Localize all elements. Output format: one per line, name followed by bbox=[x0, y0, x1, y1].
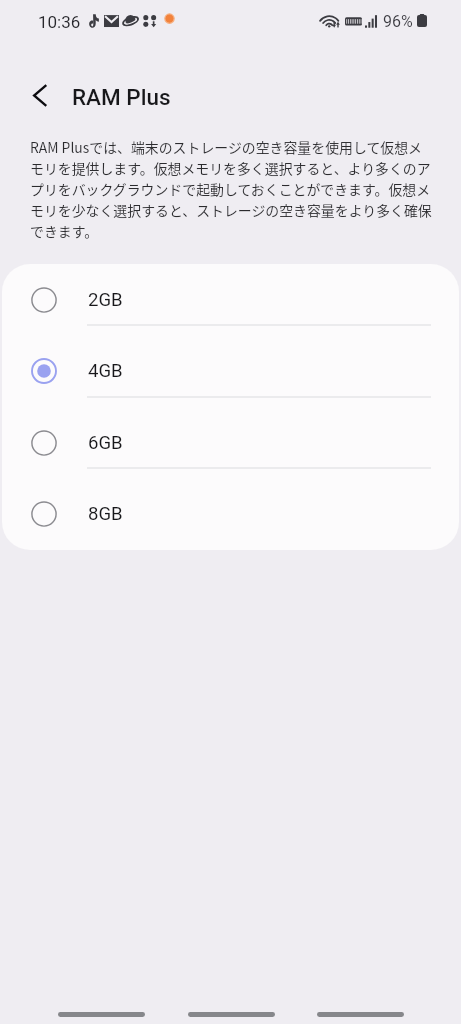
staticText: 96% bbox=[383, 12, 413, 31]
button[interactable]: 4GB bbox=[2, 335, 459, 406]
button[interactable]: 2GB bbox=[2, 264, 459, 335]
staticText: モリを提供します。仮想メモリを多く選択すると、より多くのア bbox=[30, 158, 431, 178]
staticText: RAM Plus bbox=[72, 84, 171, 110]
staticText: 10:36 bbox=[38, 12, 81, 32]
staticText: 8GB bbox=[88, 503, 123, 525]
staticText: 4GB bbox=[88, 360, 123, 382]
staticText: できます。 bbox=[30, 221, 99, 241]
button[interactable]: Back bbox=[317, 994, 404, 1022]
button[interactable]: Back bbox=[21, 76, 61, 116]
staticText: 2GB bbox=[88, 289, 123, 311]
staticText: 6GB bbox=[88, 432, 123, 454]
staticText: モリを少なく選択すると、ストレージの空き容量をより多く確保 bbox=[30, 200, 432, 220]
staticText: RAM Plusでは、端末のストレージの空き容量を使用して仮想メ bbox=[30, 137, 422, 157]
button[interactable]: Home bbox=[188, 994, 275, 1022]
button[interactable]: 8GB bbox=[2, 478, 459, 549]
staticText: プリをバックグラウンドで起動しておくことができます。仮想メ bbox=[30, 179, 431, 199]
button[interactable]: 6GB bbox=[2, 407, 459, 478]
button[interactable]: Recents bbox=[58, 994, 145, 1022]
